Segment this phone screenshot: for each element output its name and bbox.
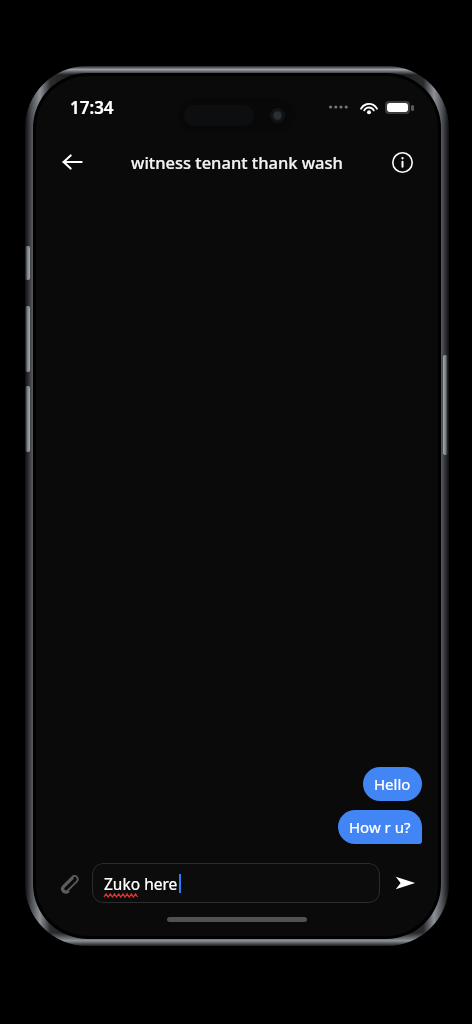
button[interactable]: Attach file — [50, 865, 86, 901]
staticText: How r u? — [349, 817, 411, 837]
button[interactable]: Hello — [363, 767, 422, 801]
button[interactable]: Zuko here — [92, 863, 380, 903]
button[interactable]: Back — [50, 140, 94, 184]
staticText: Hello — [374, 774, 411, 794]
staticText: Zuko here — [104, 873, 178, 894]
staticText: witness tenant thank wash — [131, 151, 343, 173]
button[interactable]: Send — [386, 864, 424, 902]
button[interactable]: How r u? — [338, 810, 422, 844]
staticText: 17:34 — [70, 96, 114, 119]
button[interactable]: Conversation info — [382, 142, 422, 182]
